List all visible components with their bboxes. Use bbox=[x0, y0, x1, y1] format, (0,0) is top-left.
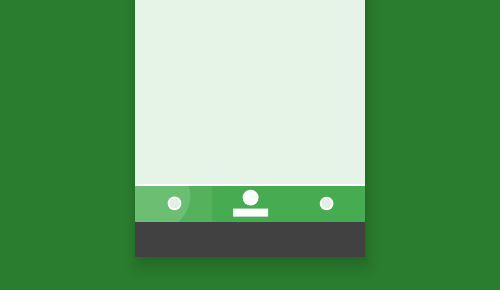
button[interactable]: Settings bbox=[289, 186, 365, 222]
button[interactable]: Account bbox=[212, 186, 289, 222]
button[interactable]: Home bbox=[135, 186, 212, 222]
